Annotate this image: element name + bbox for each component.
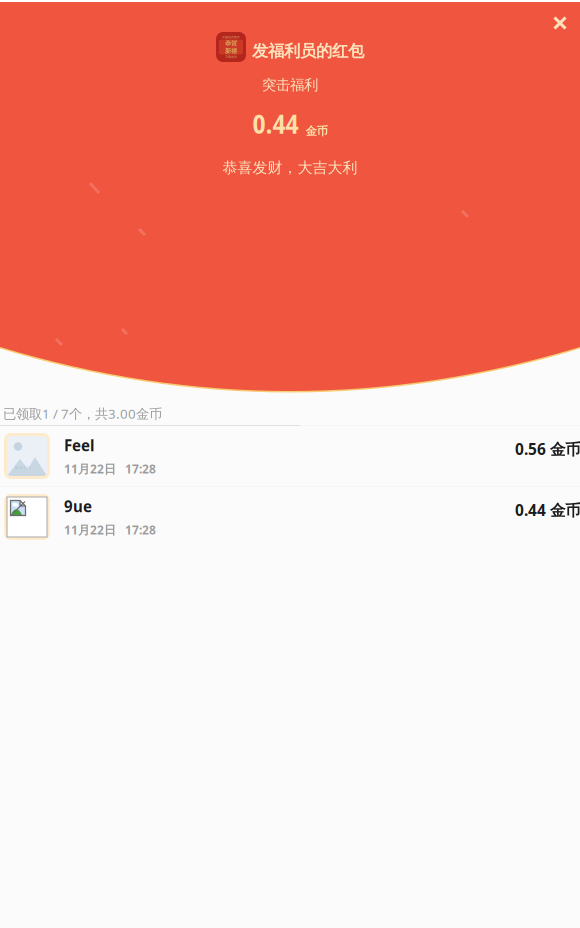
- staticText: Feel: [64, 435, 94, 456]
- staticText: 中国农历新年: [222, 35, 240, 39]
- button[interactable]: Close: [538, 1, 580, 45]
- staticText: 突击福利: [262, 76, 318, 94]
- button[interactable]: 9ue: [0, 487, 580, 547]
- staticText: 发福利员的红包: [252, 41, 364, 61]
- staticText: 11月22日: [64, 522, 116, 538]
- staticText: 0.44: [252, 105, 298, 141]
- staticText: 恭喜发财，大吉大利: [222, 158, 357, 177]
- staticText: 恭贺: [225, 39, 237, 47]
- staticText: 万事如意: [225, 55, 237, 58]
- staticText: 已领取1 / 7个，共3.00金币: [3, 404, 162, 423]
- staticText: 新禧: [225, 47, 237, 55]
- staticText: 11月22日: [64, 461, 116, 477]
- staticText: 17:28: [125, 461, 156, 477]
- staticText: 0.56 金币: [515, 438, 580, 460]
- staticText: 9ue: [64, 496, 92, 517]
- staticText: 金币: [305, 124, 327, 138]
- staticText: 0.44 金币: [515, 499, 580, 521]
- staticText: 17:28: [125, 522, 156, 538]
- staticText: ly t 5 t 2 5: [15, 465, 31, 470]
- button[interactable]: ly t 5 t 2 5: [0, 426, 580, 486]
